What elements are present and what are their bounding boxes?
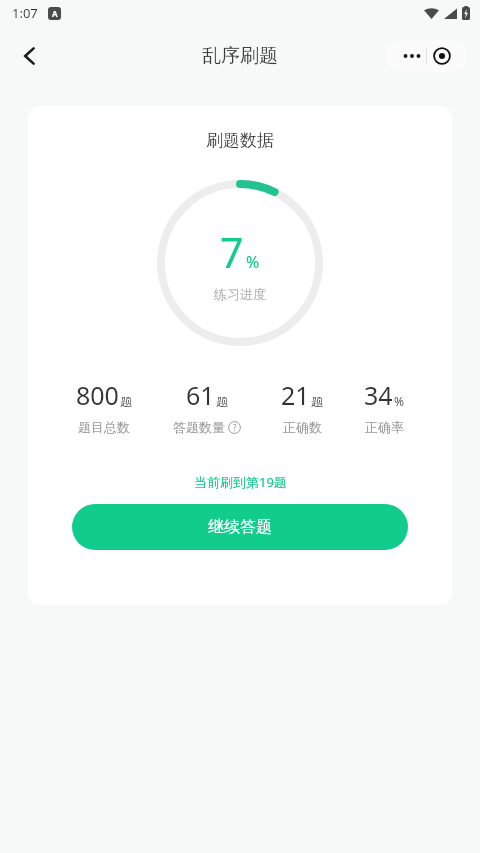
button[interactable]: Mini program menu	[386, 40, 468, 72]
button[interactable]: 继续答题	[72, 504, 408, 550]
staticText: 61	[186, 378, 215, 412]
button[interactable]: Help	[228, 421, 241, 434]
staticText: 34	[364, 378, 393, 412]
staticText: 继续答题	[208, 517, 272, 537]
staticText: 正确数	[283, 419, 322, 435]
button[interactable]: Back	[8, 34, 52, 78]
staticText: 正确率	[365, 419, 404, 435]
staticText: 21	[281, 378, 310, 412]
staticText: ?	[233, 422, 237, 433]
staticText: %	[394, 393, 404, 409]
staticText: 刷题数据	[206, 130, 274, 151]
staticText: 题	[311, 394, 323, 409]
staticText: 800	[76, 378, 119, 412]
staticText: A	[52, 8, 58, 19]
staticText: 题	[216, 394, 228, 409]
staticText: 答题数量	[173, 419, 225, 435]
staticText: 题	[120, 394, 132, 409]
staticText: 7	[220, 224, 244, 280]
staticText: 题目总数	[78, 419, 130, 435]
staticText: 当前刷到第19题	[194, 473, 287, 491]
staticText: 1:07	[12, 4, 38, 22]
staticText: 乱序刷题	[202, 44, 278, 68]
staticText: 练习进度	[214, 286, 266, 302]
staticText: %	[246, 251, 260, 273]
